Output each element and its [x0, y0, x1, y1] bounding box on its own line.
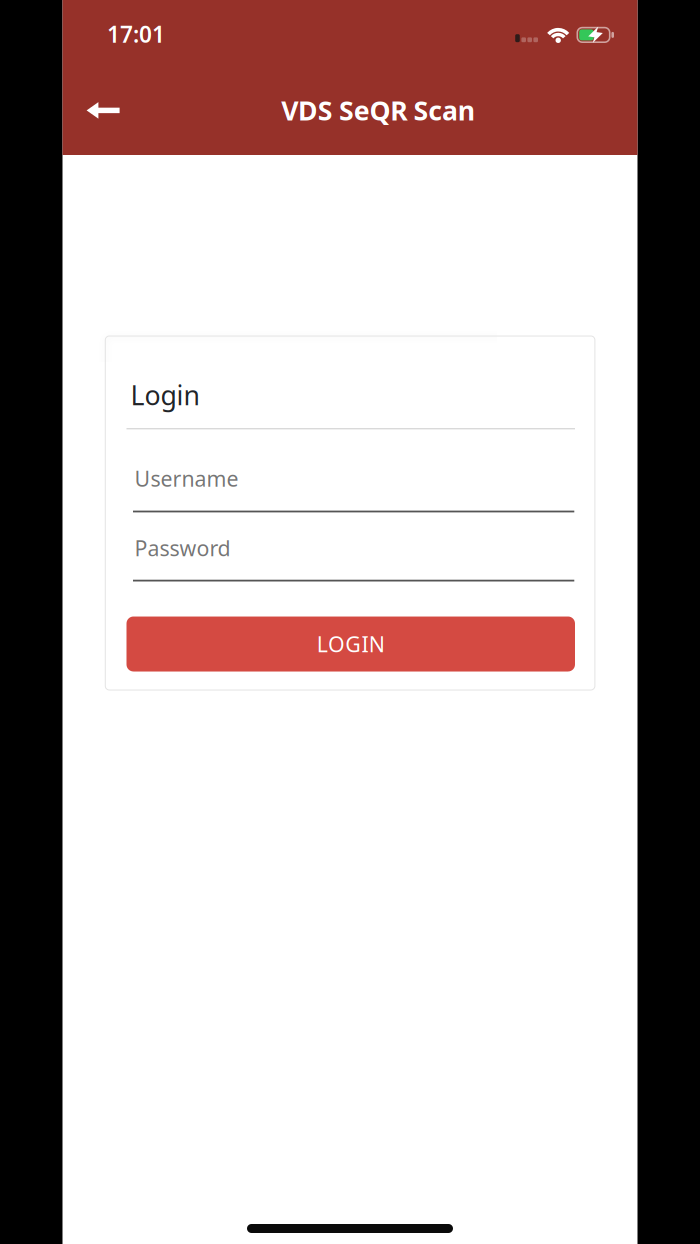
button[interactable]: Back — [82, 93, 132, 129]
staticText: LOGIN — [317, 630, 385, 658]
staticText: 17:01 — [107, 19, 165, 49]
staticText: Password — [134, 534, 230, 562]
staticText: Login — [130, 377, 199, 413]
button[interactable]: LOGIN — [126, 616, 575, 671]
staticText: Username — [134, 464, 238, 493]
staticText: VDS SeQR Scan — [281, 92, 475, 128]
